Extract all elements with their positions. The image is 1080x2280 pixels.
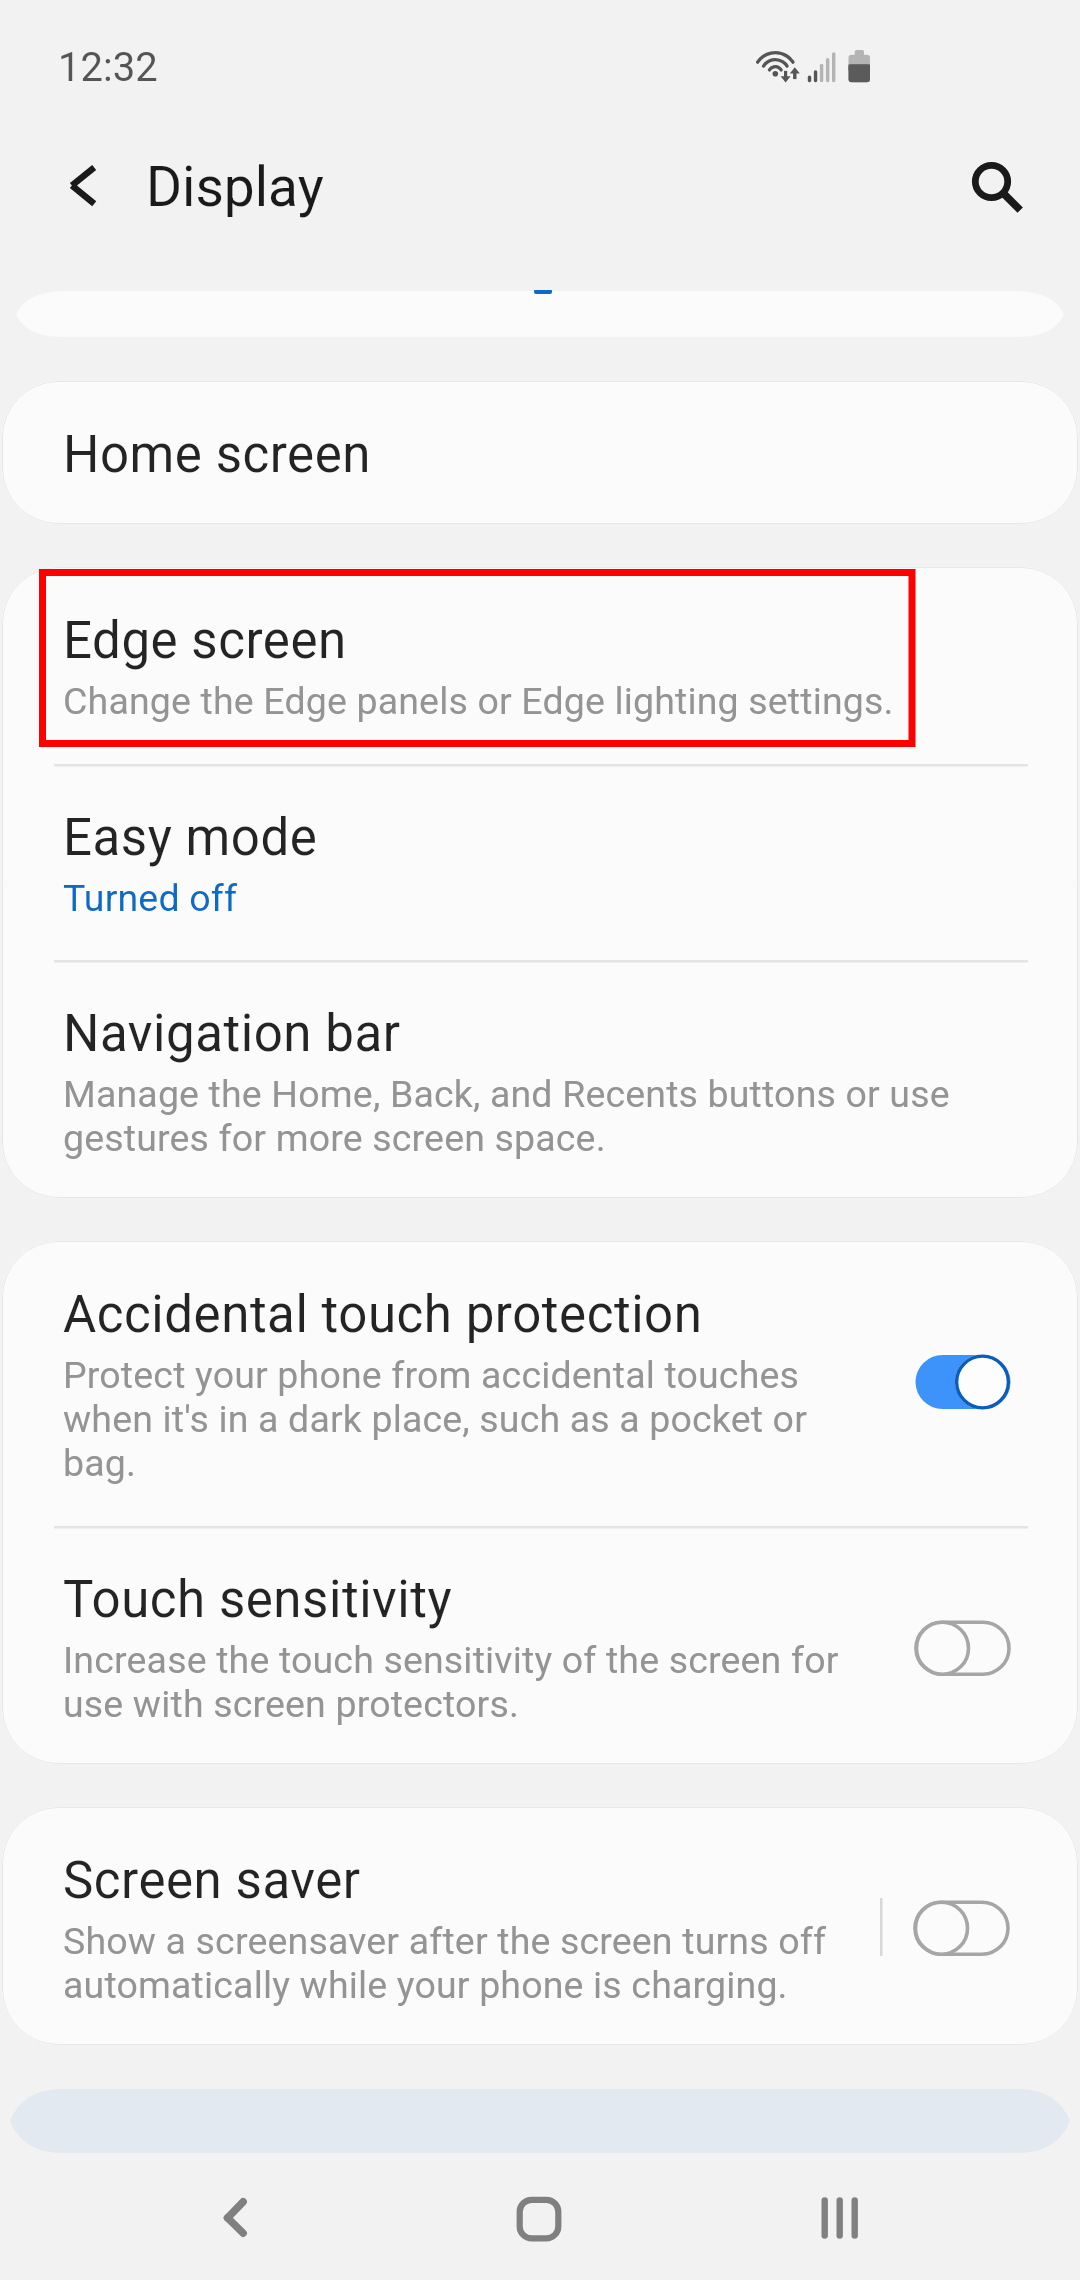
- button[interactable]: Touch sensitivity: [2, 1526, 1078, 1764]
- staticText: 12:32: [58, 44, 158, 91]
- button[interactable]: Home: [478, 2170, 598, 2270]
- button[interactable]: Easy mode: [2, 764, 1078, 963]
- button[interactable]: Screen saver: [2, 1807, 1078, 2045]
- staticText: Home screen: [63, 424, 372, 484]
- button[interactable]: [0, 288, 1080, 340]
- staticText: Protect your phone from accidental touch…: [63, 1353, 808, 1485]
- staticText: Edge screen: [63, 610, 347, 670]
- button[interactable]: Recent apps: [780, 2170, 900, 2270]
- staticText: Accidental touch protection: [63, 1284, 703, 1344]
- button[interactable]: Toggle, off: [914, 1619, 1011, 1676]
- button[interactable]: Search: [950, 140, 1040, 230]
- button[interactable]: Edge screen: [2, 567, 1078, 764]
- button[interactable]: Toggle, off: [913, 1899, 1010, 1956]
- staticText: Navigation bar: [63, 1003, 401, 1063]
- staticText: Touch sensitivity: [63, 1569, 453, 1629]
- button[interactable]: Accidental touch protection: [2, 1241, 1078, 1526]
- button[interactable]: Back: [180, 2170, 300, 2270]
- staticText: Screen saver: [63, 1850, 361, 1910]
- staticText: Increase the touch sensitivity of the sc…: [63, 1638, 839, 1726]
- staticText: Show a screensaver after the screen turn…: [63, 1919, 827, 2007]
- button[interactable]: [0, 2085, 1080, 2157]
- button[interactable]: Navigation bar: [2, 960, 1078, 1198]
- staticText: Change the Edge panels or Edge lighting …: [63, 679, 894, 723]
- button[interactable]: Accidental touch protection, on: [915, 1354, 1012, 1411]
- staticText: Manage the Home, Back, and Recents butto…: [63, 1072, 950, 1160]
- staticText: Display: [146, 155, 324, 219]
- button[interactable]: Navigate up: [34, 138, 130, 234]
- staticText: Easy mode: [63, 807, 318, 867]
- staticText: Turned off: [63, 876, 238, 920]
